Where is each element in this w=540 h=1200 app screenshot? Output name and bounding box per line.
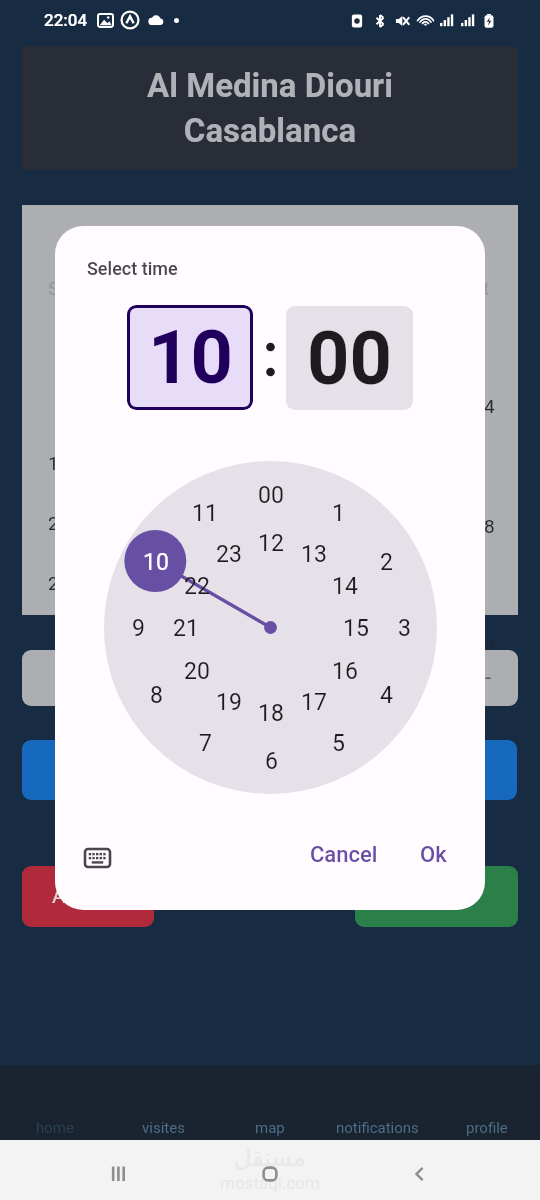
- staticText: 15: [343, 615, 369, 642]
- staticText: Select time: [87, 258, 178, 279]
- staticText: 14: [332, 573, 358, 600]
- staticText: 3: [398, 615, 411, 642]
- staticText: home: [36, 1119, 74, 1137]
- button[interactable]: profile: [433, 1115, 540, 1140]
- button[interactable]: map: [216, 1115, 324, 1140]
- button[interactable]: 00: [286, 306, 413, 410]
- staticText: 16: [332, 658, 358, 685]
- button[interactable]: 18: [247, 689, 295, 737]
- staticText: 11: [192, 500, 218, 527]
- staticText: visites: [142, 1119, 185, 1137]
- button[interactable]: Annuler: [22, 866, 154, 927]
- button[interactable]: 12: [247, 519, 295, 567]
- staticText: 22: [184, 573, 210, 600]
- button[interactable]: 5: [314, 719, 362, 767]
- button[interactable]: 15: [332, 604, 380, 652]
- button[interactable]: Valider: [355, 866, 518, 927]
- staticText: 6: [265, 748, 278, 775]
- button[interactable]: 23: [205, 530, 253, 578]
- staticText: notifications: [336, 1119, 419, 1137]
- staticText: 21:00: [48, 572, 96, 594]
- button[interactable]: 4: [362, 671, 410, 719]
- staticText: 10: [148, 314, 233, 401]
- staticText: 8: [150, 682, 163, 709]
- staticText: Ok: [420, 842, 447, 868]
- button[interactable]: Switch to text input: [75, 836, 119, 880]
- button[interactable]: 13: [290, 530, 338, 578]
- button[interactable]: 22: [173, 562, 221, 610]
- staticText: 17: [301, 689, 327, 716]
- button[interactable]: Al Medina Diouri Casablanca: [22, 46, 518, 170]
- staticText: مستقل: [234, 1144, 306, 1172]
- button[interactable]: 9: [114, 604, 162, 652]
- button[interactable]: 10: [127, 305, 253, 410]
- button[interactable]: 8: [132, 671, 180, 719]
- button[interactable]: [22, 740, 517, 800]
- button[interactable]: 20: [173, 647, 221, 695]
- staticText: 9: [132, 615, 145, 642]
- staticText: 00: [307, 315, 392, 402]
- staticText: Cancel: [310, 842, 378, 868]
- staticText: 21: [173, 615, 199, 642]
- button[interactable]: visites: [109, 1115, 217, 1140]
- staticText: 10: [143, 549, 169, 576]
- button[interactable]: 16: [321, 647, 369, 695]
- button[interactable]: home: [1, 1115, 109, 1140]
- button[interactable]: Home: [250, 1154, 290, 1194]
- staticText: 20:00: [48, 512, 96, 534]
- button[interactable]: 1: [314, 489, 362, 537]
- staticText: Valider: [404, 884, 469, 909]
- button[interactable]: Back: [400, 1154, 440, 1194]
- staticText: 13:00: [48, 452, 96, 474]
- staticText: 20: [184, 658, 210, 685]
- staticText: Al Medina Diouri Casablanca: [147, 66, 393, 150]
- staticText: -: [485, 665, 492, 691]
- staticText: t: [483, 277, 490, 299]
- staticText: map: [255, 1119, 285, 1137]
- staticText: Selectionner la date et heure de depart: [48, 277, 374, 299]
- button[interactable]: 14: [321, 562, 369, 610]
- staticText: 4: [484, 395, 495, 417]
- staticText: Annuler: [52, 884, 124, 909]
- staticText: 19: [216, 689, 242, 716]
- button[interactable]: 10: [132, 538, 180, 586]
- button[interactable]: Recents: [98, 1154, 138, 1194]
- staticText: 5: [332, 730, 345, 757]
- staticText: 4: [380, 682, 393, 709]
- button[interactable]: 3: [380, 604, 428, 652]
- staticText: profile: [466, 1119, 508, 1137]
- button[interactable]: 21: [162, 604, 210, 652]
- staticText: 2: [484, 635, 495, 657]
- button[interactable]: 6: [247, 737, 295, 785]
- staticText: 8: [484, 515, 495, 537]
- staticText: 13: [301, 541, 327, 568]
- button[interactable]: 19: [205, 678, 253, 726]
- staticText: mostaql.com: [220, 1173, 320, 1193]
- button[interactable]: 11: [181, 489, 229, 537]
- button[interactable]: -: [22, 650, 518, 706]
- button[interactable]: Cancel: [301, 833, 387, 877]
- button[interactable]: 2: [362, 538, 410, 586]
- button[interactable]: 7: [181, 719, 229, 767]
- staticText: 23: [216, 541, 242, 568]
- staticText: 12: [258, 530, 284, 557]
- button[interactable]: 17: [290, 678, 338, 726]
- staticText: 2: [380, 549, 393, 576]
- button[interactable]: notifications: [323, 1115, 431, 1140]
- staticText: 18: [258, 700, 284, 727]
- staticText: 22:04: [44, 10, 88, 30]
- button[interactable]: Ok: [411, 833, 456, 877]
- staticText: 1: [332, 500, 345, 527]
- staticText: 00: [258, 482, 284, 509]
- staticText: 7: [199, 730, 212, 757]
- button[interactable]: 00: [247, 471, 295, 519]
